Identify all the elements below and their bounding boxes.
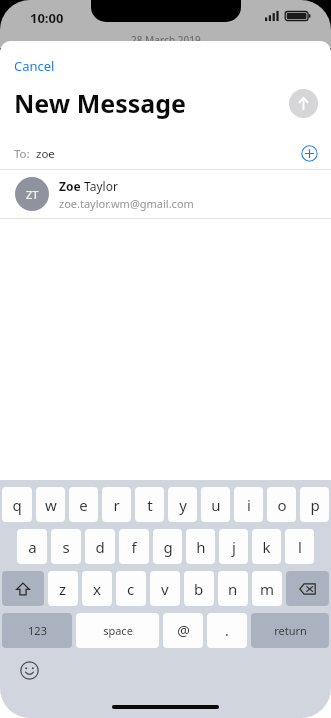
staticText: o <box>277 495 287 515</box>
staticText: n <box>228 579 238 599</box>
button[interactable]: return <box>251 613 329 648</box>
staticText: 10:00 <box>30 9 64 27</box>
staticText: Cancel <box>14 57 55 75</box>
staticText: y <box>179 495 187 515</box>
staticText: q <box>12 495 22 515</box>
button[interactable]: Shift <box>2 571 44 606</box>
button[interactable]: h <box>186 529 215 564</box>
staticText: Taylor <box>84 178 118 194</box>
staticText: zoe.taylor.wm@gmail.com <box>59 196 194 211</box>
staticText: b <box>194 579 204 599</box>
staticText: u <box>211 495 221 515</box>
button[interactable]: i <box>234 487 263 522</box>
staticText: k <box>262 537 271 557</box>
staticText: z <box>59 579 67 599</box>
staticText: a <box>28 537 37 557</box>
staticText: r <box>113 495 120 515</box>
button[interactable]: n <box>218 571 248 606</box>
button[interactable]: y <box>168 487 197 522</box>
button[interactable]: b <box>184 571 214 606</box>
staticText: g <box>163 537 173 557</box>
button[interactable]: m <box>252 571 282 606</box>
button[interactable]: j <box>219 529 248 564</box>
button[interactable]: ZT <box>0 170 331 218</box>
staticText: f <box>131 537 137 557</box>
button[interactable]: u <box>201 487 230 522</box>
staticText: To: <box>14 146 30 162</box>
staticText: s <box>62 537 70 557</box>
button[interactable]: d <box>85 529 115 564</box>
staticText: w <box>45 495 57 515</box>
staticText: t <box>147 495 153 515</box>
staticText: . <box>225 621 229 640</box>
staticText: j <box>232 537 236 557</box>
button[interactable]: f <box>119 529 149 564</box>
staticText: v <box>161 579 169 599</box>
button[interactable]: v <box>150 571 180 606</box>
button[interactable]: e <box>69 487 98 522</box>
staticText: c <box>127 579 135 599</box>
staticText: d <box>95 537 105 557</box>
button[interactable]: p <box>300 487 329 522</box>
staticText: ZT <box>26 187 39 202</box>
button[interactable]: 123 <box>2 613 72 648</box>
button[interactable]: Send <box>289 89 318 118</box>
button[interactable]: Cancel <box>6 54 63 78</box>
button[interactable]: @ <box>163 613 203 648</box>
button[interactable]: l <box>285 529 314 564</box>
button[interactable]: g <box>153 529 182 564</box>
button[interactable]: t <box>135 487 164 522</box>
button[interactable]: space <box>76 613 159 648</box>
button[interactable]: z <box>48 571 78 606</box>
button[interactable]: x <box>82 571 112 606</box>
staticText: return <box>274 623 307 638</box>
button[interactable]: a <box>17 529 47 564</box>
button[interactable]: To: <box>0 138 331 169</box>
staticText: 123 <box>28 623 47 638</box>
staticText: l <box>298 537 302 557</box>
staticText: Zoe <box>59 178 84 194</box>
button[interactable]: Emoji <box>20 661 39 680</box>
button[interactable]: s <box>51 529 81 564</box>
button[interactable]: Add contact <box>301 145 318 162</box>
staticText: @ <box>177 621 190 640</box>
staticText: p <box>310 495 320 515</box>
staticText: New Message <box>14 86 289 120</box>
staticText: 28 March 2019 <box>131 33 201 47</box>
button[interactable]: r <box>102 487 131 522</box>
staticText: h <box>196 537 206 557</box>
button[interactable]: Backspace <box>286 571 329 606</box>
staticText: m <box>260 579 275 599</box>
button[interactable]: k <box>252 529 281 564</box>
staticText: e <box>79 495 88 515</box>
button[interactable]: w <box>36 487 65 522</box>
button[interactable]: q <box>2 487 32 522</box>
staticText: i <box>247 495 251 515</box>
button[interactable]: o <box>267 487 296 522</box>
staticText: space <box>103 623 133 638</box>
staticText: zoe <box>36 146 301 162</box>
button[interactable]: . <box>207 613 247 648</box>
staticText: x <box>93 579 101 599</box>
button[interactable]: c <box>116 571 146 606</box>
